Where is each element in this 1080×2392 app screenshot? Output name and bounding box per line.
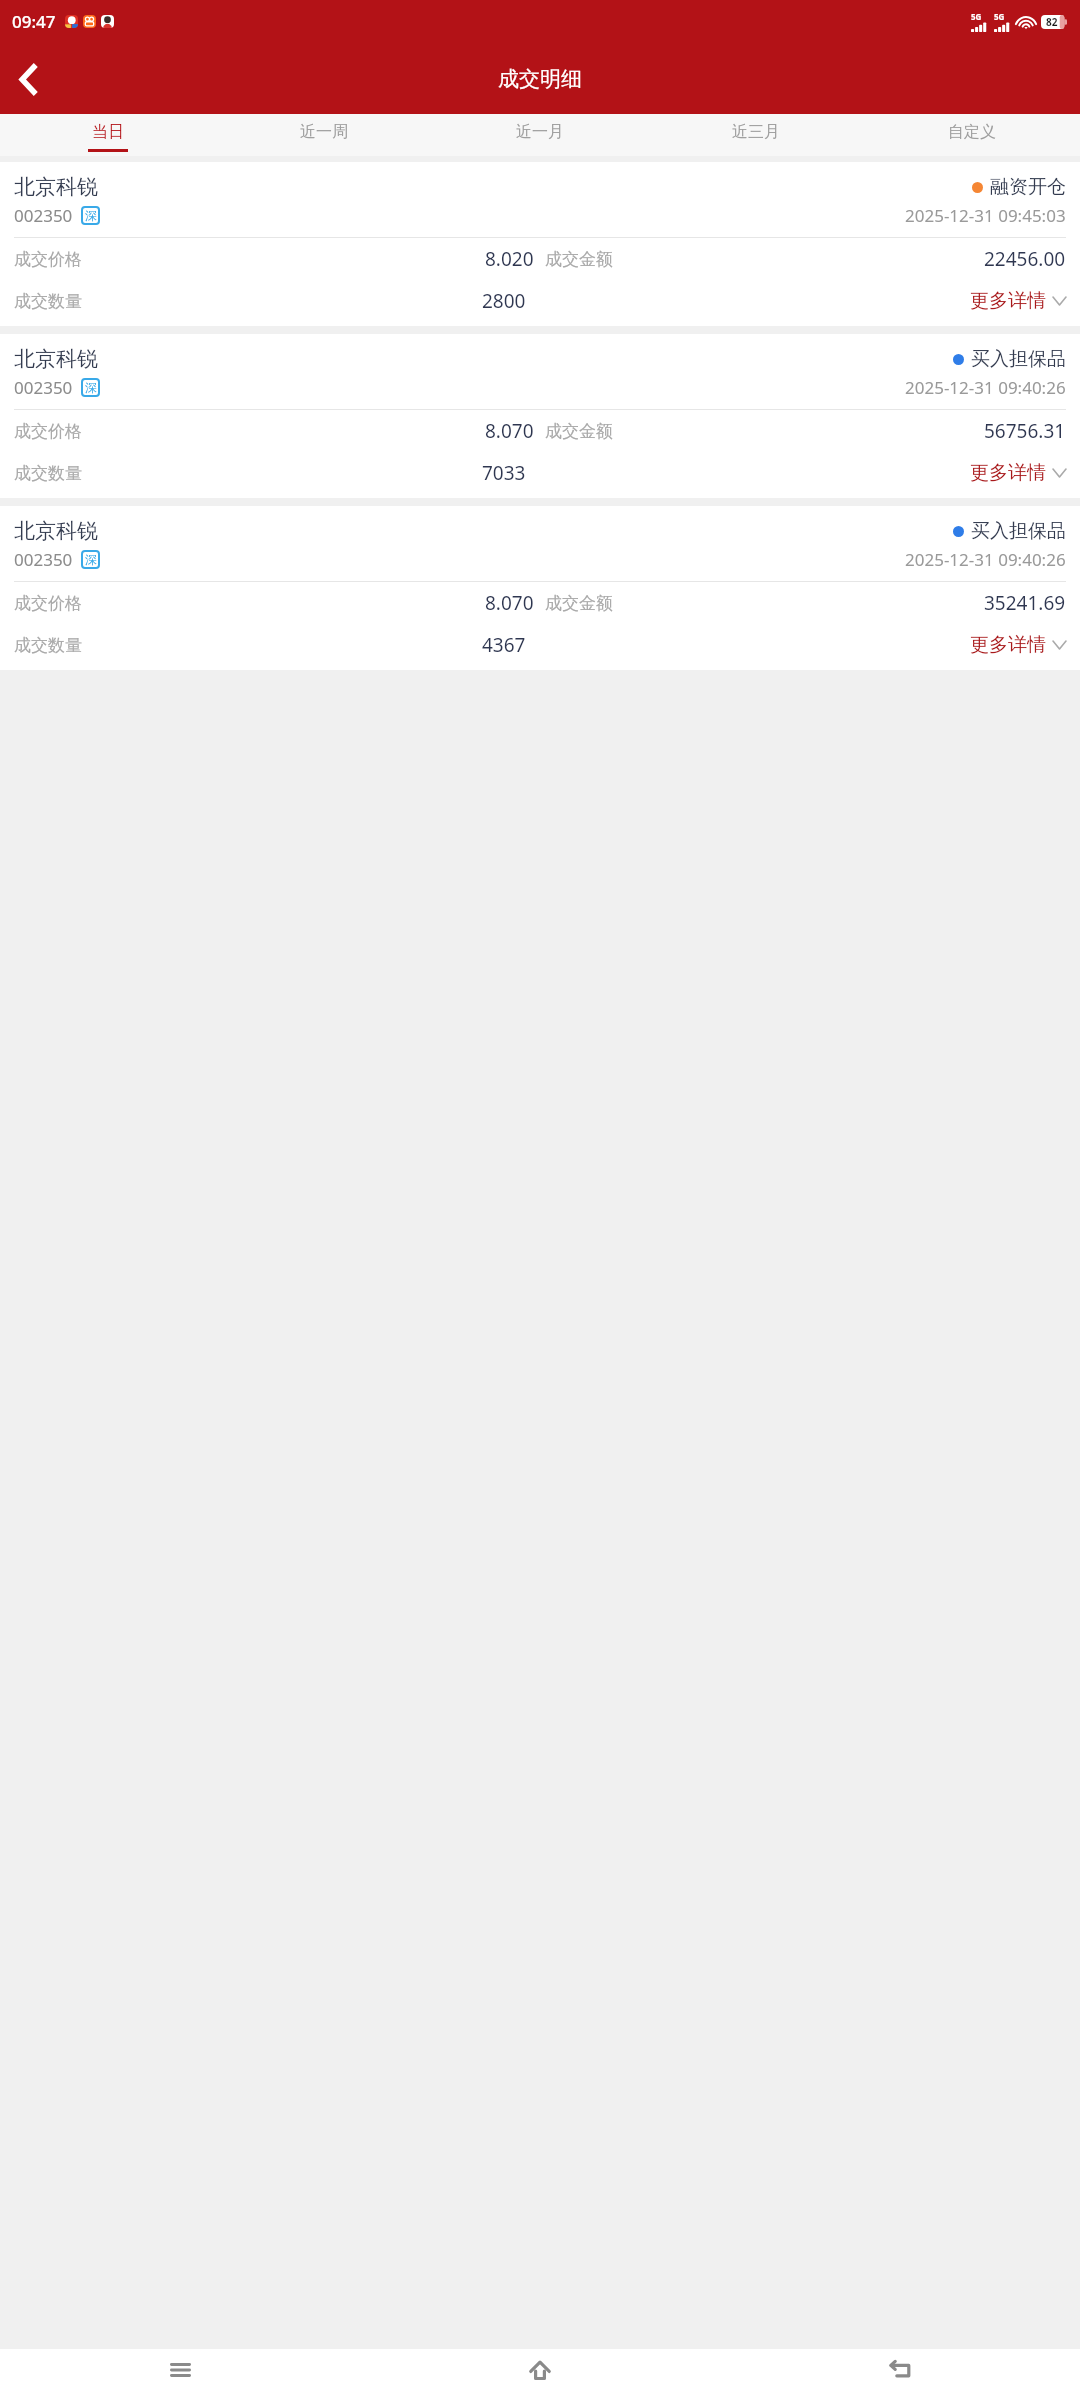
staticText: 近三月 <box>732 122 780 142</box>
button[interactable]: 最近任务 <box>152 2349 208 2392</box>
staticText: 北京科锐 <box>14 174 98 200</box>
staticText: 002350 <box>14 548 73 571</box>
staticText: 更多详情 <box>970 289 1046 313</box>
staticText: 35241.69 <box>984 590 1066 616</box>
staticText: 002350 <box>14 204 73 227</box>
staticText: 2800 <box>482 288 526 314</box>
staticText: 成交价格 <box>14 593 82 614</box>
staticText: 成交价格 <box>14 421 82 442</box>
staticText: 更多详情 <box>970 633 1046 657</box>
button[interactable]: 近一周 <box>216 114 432 156</box>
button[interactable]: 近一月 <box>432 114 648 156</box>
staticText: 深 <box>85 208 97 223</box>
button[interactable]: 当日 <box>0 114 216 156</box>
staticText: 深 <box>85 380 97 395</box>
staticText: 更多详情 <box>970 461 1046 485</box>
button[interactable]: 更多详情 <box>970 289 1066 313</box>
staticText: 买入担保品 <box>971 519 1066 543</box>
staticText: 北京科锐 <box>14 518 98 544</box>
staticText: 2025-12-31 09:40:26 <box>905 548 1066 571</box>
staticText: 北京科锐 <box>14 346 98 372</box>
button[interactable]: 北京科锐 <box>0 334 1080 498</box>
button[interactable]: 返回 <box>0 51 56 107</box>
button[interactable]: 近三月 <box>648 114 864 156</box>
staticText: 4367 <box>482 632 526 658</box>
button[interactable]: 更多详情 <box>970 633 1066 657</box>
staticText: 5G <box>971 11 982 22</box>
button[interactable]: 返回 <box>872 2349 928 2392</box>
staticText: 002350 <box>14 376 73 399</box>
staticText: 8.020 <box>485 246 534 272</box>
staticText: 5G <box>994 11 1005 22</box>
button[interactable]: 更多详情 <box>970 461 1066 485</box>
button[interactable]: 北京科锐 <box>0 162 1080 326</box>
staticText: 买入担保品 <box>971 347 1066 371</box>
button[interactable]: 自定义 <box>864 114 1080 156</box>
staticText: 近一月 <box>516 122 564 142</box>
staticText: 2025-12-31 09:40:26 <box>905 376 1066 399</box>
staticText: 成交数量 <box>14 291 82 312</box>
staticText: 成交金额 <box>545 421 613 442</box>
staticText: 22456.00 <box>984 246 1066 272</box>
staticText: 近一周 <box>300 122 348 142</box>
staticText: 当日 <box>92 122 124 142</box>
staticText: 2025-12-31 09:45:03 <box>905 204 1066 227</box>
staticText: 成交数量 <box>14 635 82 656</box>
staticText: 8.070 <box>485 590 534 616</box>
staticText: 56756.31 <box>984 418 1066 444</box>
staticText: 成交金额 <box>545 249 613 270</box>
staticText: 成交明细 <box>498 66 582 92</box>
button[interactable]: 主页 <box>512 2349 568 2392</box>
button[interactable]: 北京科锐 <box>0 506 1080 670</box>
staticText: 成交数量 <box>14 463 82 484</box>
staticText: 成交金额 <box>545 593 613 614</box>
staticText: 7033 <box>482 460 526 486</box>
staticText: 深 <box>85 552 97 567</box>
staticText: 8.070 <box>485 418 534 444</box>
staticText: 09:47 <box>12 10 56 33</box>
staticText: 82 <box>1046 15 1058 29</box>
staticText: 成交价格 <box>14 249 82 270</box>
staticText: 自定义 <box>948 122 996 142</box>
staticText: 融资开仓 <box>990 175 1066 199</box>
